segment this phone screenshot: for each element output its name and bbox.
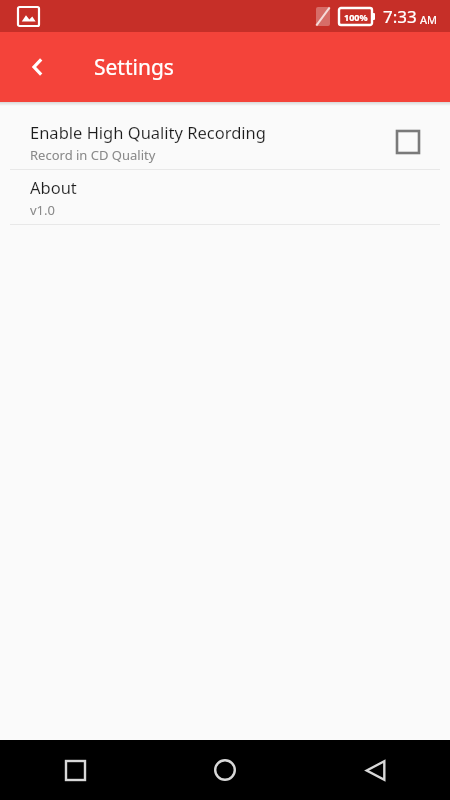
button[interactable]: Back	[300, 740, 450, 800]
button[interactable]: Home	[150, 740, 300, 800]
staticText: Enable High Quality Recording	[30, 121, 266, 143]
staticText: 7:33	[383, 5, 417, 28]
staticText: Settings	[94, 53, 174, 82]
button[interactable]: Enable High Quality Recording checkbox	[396, 130, 420, 154]
button[interactable]: Enable High Quality Recording	[0, 115, 450, 169]
button[interactable]: About	[0, 170, 450, 224]
staticText: Record in CD Quality	[30, 146, 156, 164]
button[interactable]: Back	[14, 43, 62, 91]
button[interactable]: Recents	[0, 740, 150, 800]
staticText: 100%	[344, 11, 368, 23]
staticText: About	[30, 176, 77, 198]
staticText: AM	[420, 12, 438, 27]
staticText: v1.0	[30, 201, 55, 219]
